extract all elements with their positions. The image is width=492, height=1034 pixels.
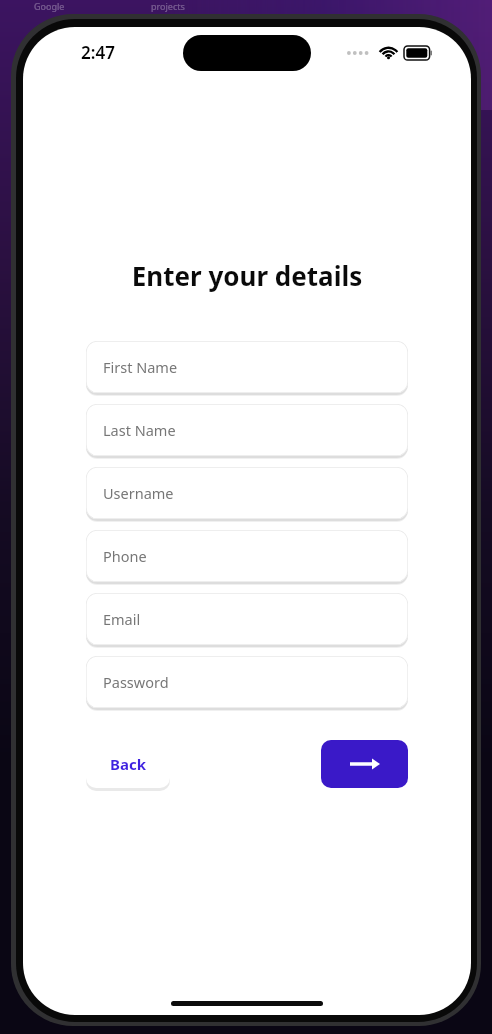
staticText: projects: [151, 0, 185, 12]
button[interactable]: Last Name: [86, 404, 408, 456]
staticText: Username: [103, 483, 174, 503]
staticText: Phone: [103, 546, 147, 566]
staticText: Last Name: [103, 420, 176, 440]
staticText: Email: [103, 609, 141, 629]
button[interactable]: Email: [86, 593, 408, 645]
button[interactable]: Phone: [86, 530, 408, 582]
staticText: First Name: [103, 357, 178, 377]
button[interactable]: Password: [86, 656, 408, 708]
button[interactable]: First Name: [86, 341, 408, 393]
button[interactable]: Back: [86, 740, 170, 788]
staticText: 2:47: [81, 41, 115, 64]
button[interactable]: Username: [86, 467, 408, 519]
button[interactable]: Next: [321, 740, 408, 788]
staticText: Back: [110, 754, 147, 774]
staticText: Password: [103, 672, 169, 692]
staticText: Google: [34, 0, 65, 12]
staticText: Enter your details: [23, 258, 471, 293]
